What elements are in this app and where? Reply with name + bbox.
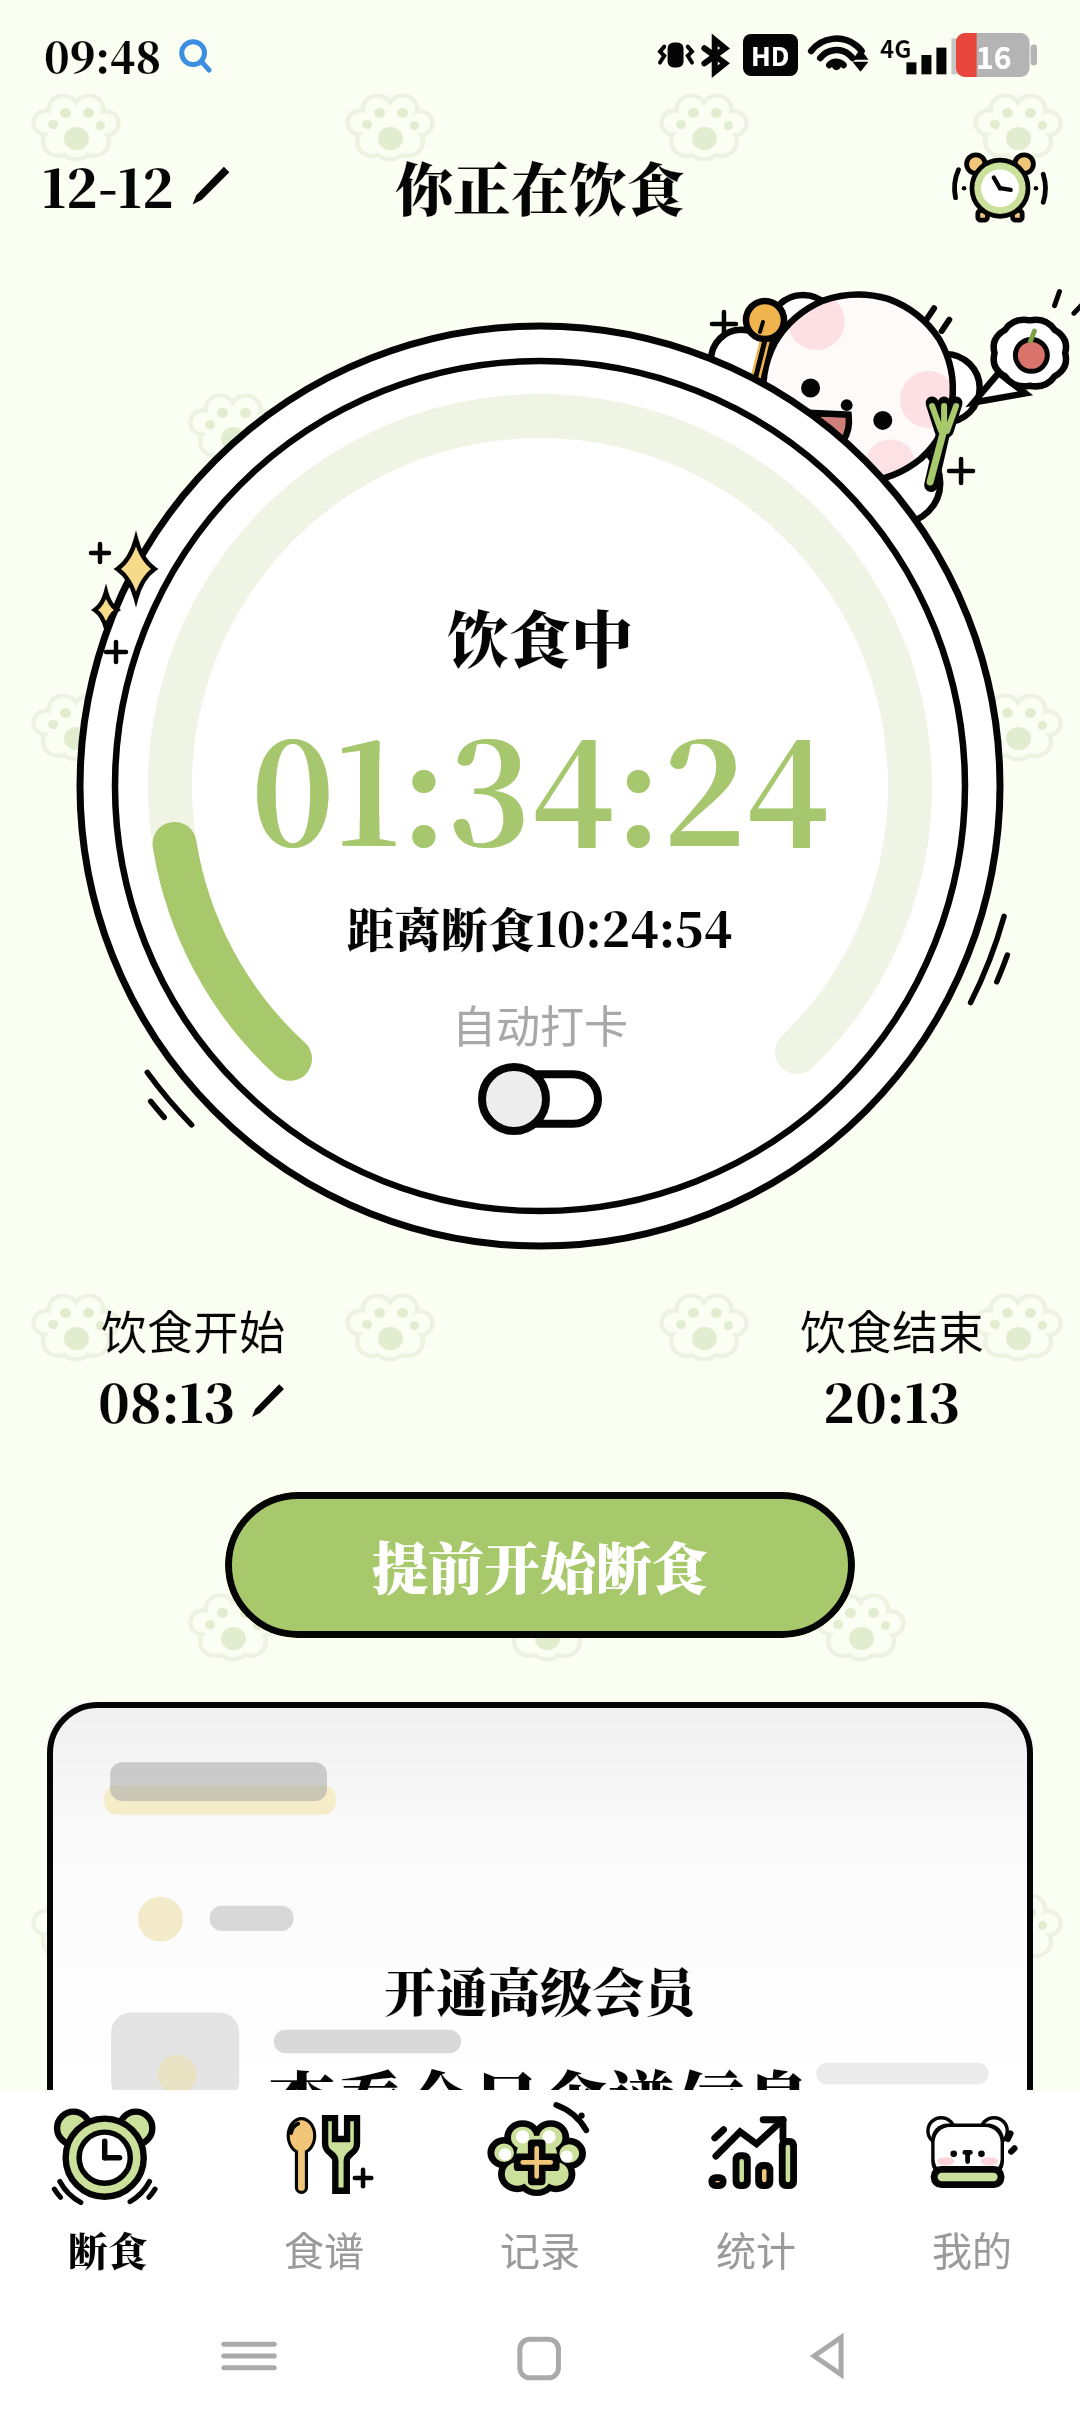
button[interactable]: Home [498, 2314, 582, 2398]
staticText: HD [751, 36, 790, 74]
button[interactable]: Back [789, 2314, 873, 2398]
staticText: 09:48 [44, 25, 162, 85]
staticText: 记录 [500, 2220, 580, 2278]
staticText: 你正在饮食 [395, 144, 686, 227]
staticText: 查看今日食谱信息 [268, 2050, 813, 2090]
staticText: 提前开始断食 [372, 1525, 708, 1605]
staticText: 16 [976, 34, 1012, 77]
staticText: 08:13 [98, 1363, 236, 1438]
staticText: 饮食结束 [800, 1296, 984, 1363]
staticText: 距离断食10:24:54 [347, 893, 733, 961]
button[interactable]: 食谱 [216, 2090, 432, 2300]
button[interactable]: 统计 [648, 2090, 864, 2300]
staticText: 饮食开始 [101, 1296, 285, 1363]
staticText: 我的 [932, 2220, 1012, 2278]
staticText: 自动打卡 [452, 992, 628, 1056]
staticText: 断食 [68, 2220, 148, 2277]
button[interactable]: 断食 [0, 2090, 216, 2300]
button[interactable]: 记录 [432, 2090, 648, 2300]
button[interactable]: 我的 [864, 2090, 1080, 2300]
staticText: 20:13 [823, 1363, 961, 1438]
button[interactable]: Auto check-in toggle [478, 1063, 602, 1135]
staticText: 饮食中 [447, 592, 634, 681]
staticText: 4G [880, 30, 912, 65]
button[interactable]: 饮食开始 [98, 1296, 288, 1438]
button[interactable]: Recents [207, 2314, 291, 2398]
staticText: 12-12 [42, 148, 174, 223]
staticText: 统计 [716, 2220, 796, 2278]
staticText: 开通高级会员 [384, 1952, 697, 2027]
button[interactable]: 开通高级会员 [47, 1702, 1033, 2090]
staticText: 食谱 [284, 2220, 364, 2278]
button[interactable]: 12-12 [42, 148, 234, 223]
button[interactable]: Alarm [954, 139, 1046, 231]
staticText: 01:34:24 [251, 684, 830, 887]
button[interactable]: 提前开始断食 [225, 1492, 855, 1638]
